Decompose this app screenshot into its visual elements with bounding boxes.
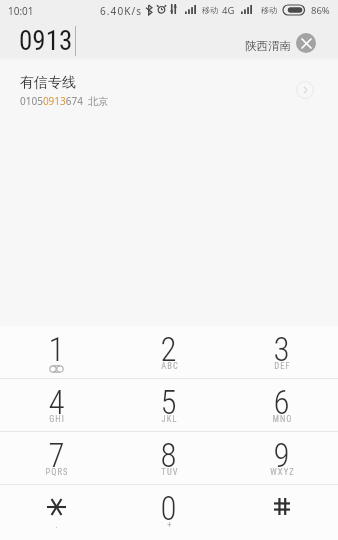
staticText: 2 bbox=[160, 330, 177, 369]
button[interactable]: 4 bbox=[0, 379, 112, 431]
staticText: 5 bbox=[160, 383, 177, 422]
button[interactable]: 0 bbox=[112, 485, 225, 537]
staticText: JKL bbox=[161, 414, 178, 424]
staticText: 86% bbox=[311, 4, 330, 17]
button[interactable]: 9 bbox=[225, 432, 338, 484]
staticText: 移动 bbox=[202, 5, 218, 15]
staticText: 6 bbox=[273, 383, 290, 422]
button[interactable] bbox=[225, 485, 338, 537]
staticText: ABC bbox=[161, 361, 179, 371]
button[interactable]: . bbox=[0, 485, 112, 537]
button[interactable]: 2 bbox=[112, 326, 225, 378]
staticText: 1 bbox=[48, 330, 65, 369]
button[interactable]: 有信专线 bbox=[0, 58, 338, 114]
staticText: PQRS bbox=[45, 467, 69, 477]
staticText: 9 bbox=[273, 436, 290, 475]
staticText: 陕西渭南 bbox=[245, 39, 291, 53]
staticText: WXYZ bbox=[270, 467, 295, 477]
staticText: 6.40K/s bbox=[100, 4, 143, 18]
staticText: 0913 bbox=[19, 25, 73, 57]
staticText: DEF bbox=[274, 361, 291, 371]
staticText: 4 bbox=[48, 383, 65, 422]
staticText: 0 bbox=[160, 489, 177, 528]
staticText: GHI bbox=[49, 414, 65, 424]
staticText: 有信专线 bbox=[20, 74, 76, 92]
button[interactable]: 7 bbox=[0, 432, 112, 484]
staticText: + bbox=[167, 520, 173, 530]
staticText: 4G bbox=[222, 4, 235, 17]
button[interactable]: 5 bbox=[112, 379, 225, 431]
staticText: 移动 bbox=[261, 5, 277, 15]
button[interactable]: 3 bbox=[225, 326, 338, 378]
staticText: 10:01 bbox=[8, 4, 34, 18]
staticText: 8 bbox=[160, 436, 177, 475]
staticText: TUV bbox=[161, 467, 179, 477]
staticText: 3 bbox=[273, 330, 290, 369]
button[interactable]: 8 bbox=[112, 432, 225, 484]
button[interactable]: Clear bbox=[296, 33, 316, 53]
staticText: 01050913674 北京 bbox=[20, 94, 109, 108]
button[interactable]: Open detail bbox=[296, 81, 314, 99]
staticText: MNO bbox=[272, 414, 293, 424]
staticText: . bbox=[55, 520, 59, 530]
staticText: 7 bbox=[48, 436, 65, 475]
button[interactable]: 1 bbox=[0, 326, 112, 378]
button[interactable]: 6 bbox=[225, 379, 338, 431]
